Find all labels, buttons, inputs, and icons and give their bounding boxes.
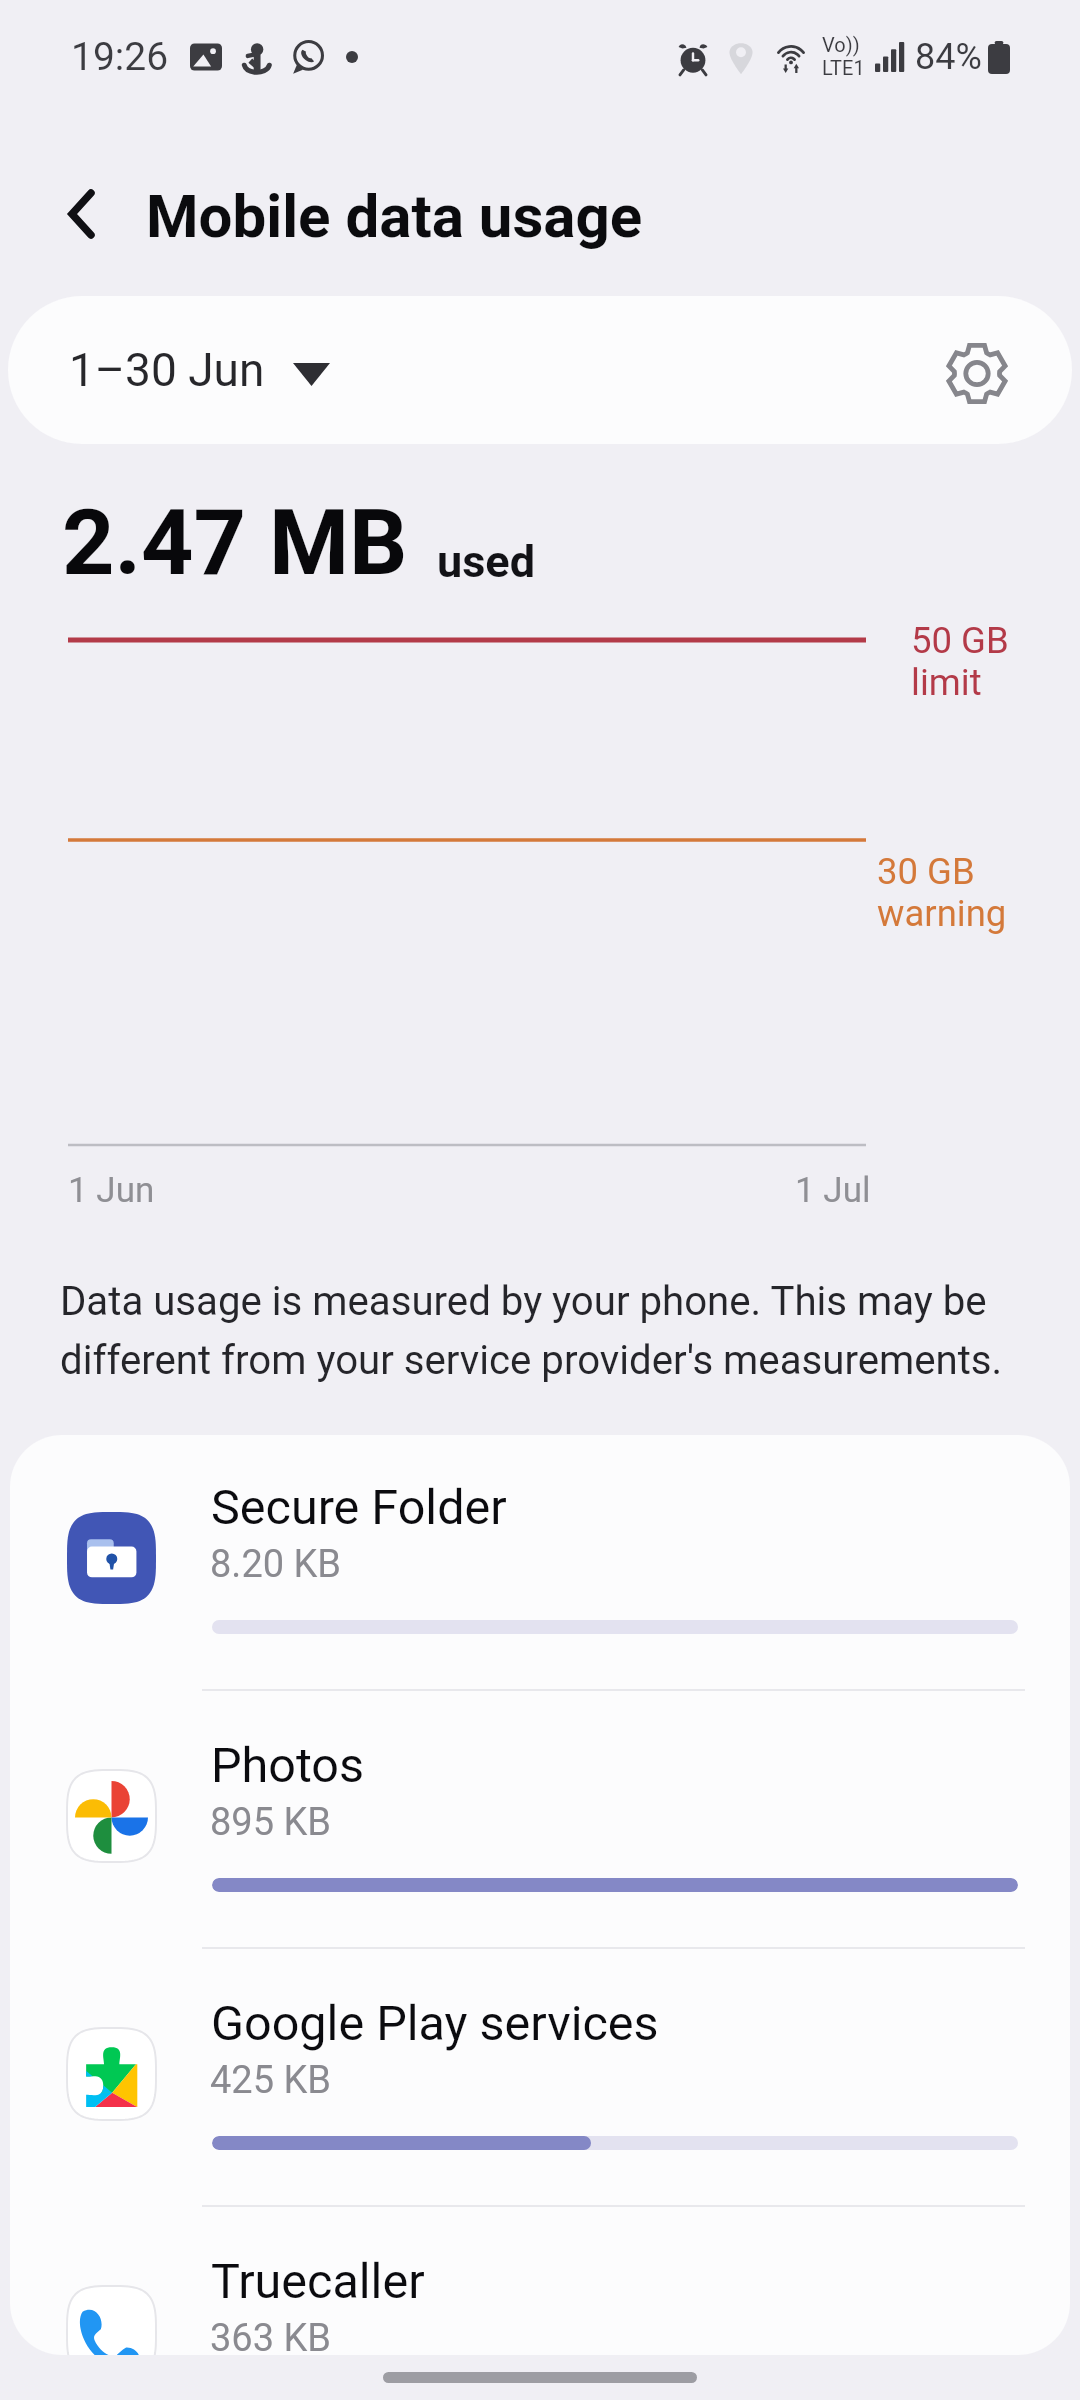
staticText: 30 GB — [877, 851, 975, 893]
staticText: Mobile data usage — [146, 181, 643, 251]
staticText: 84% — [915, 36, 982, 78]
staticText: 425 KB — [210, 2058, 332, 2103]
staticText: Truecaller — [211, 2253, 425, 2310]
staticText: used — [437, 535, 536, 588]
staticText: 1–30 Jun — [69, 343, 265, 397]
staticText: 1 Jun — [68, 1170, 155, 1211]
staticText: LTE1 — [822, 56, 865, 79]
staticText: Photos — [211, 1737, 365, 1794]
button[interactable]: Photos — [10, 1693, 1070, 1951]
staticText: Secure Folder — [211, 1479, 507, 1536]
staticText: warning — [877, 893, 1007, 935]
staticText: Google Play services — [211, 1995, 659, 2052]
button[interactable]: Google Play services — [10, 1951, 1070, 2209]
staticText: Vo)) — [822, 33, 860, 56]
staticText: 1 Jul — [795, 1170, 871, 1211]
staticText: 895 KB — [210, 1800, 332, 1845]
button[interactable]: Settings — [934, 330, 1020, 416]
staticText: Data usage is measured by your phone. Th… — [60, 1268, 1030, 1386]
button[interactable]: Secure Folder — [10, 1435, 1070, 1693]
button[interactable]: Truecaller — [10, 2209, 1070, 2355]
staticText: 363 KB — [210, 2316, 332, 2355]
staticText: 2.47 MB — [62, 489, 408, 596]
staticText: limit — [911, 662, 982, 704]
staticText: 8.20 KB — [210, 1542, 342, 1587]
staticText: 19:26 — [71, 34, 169, 80]
staticText: 50 GB — [911, 620, 1009, 662]
button[interactable]: 1–30 Jun — [8, 296, 1072, 444]
button[interactable]: Back — [31, 158, 131, 270]
